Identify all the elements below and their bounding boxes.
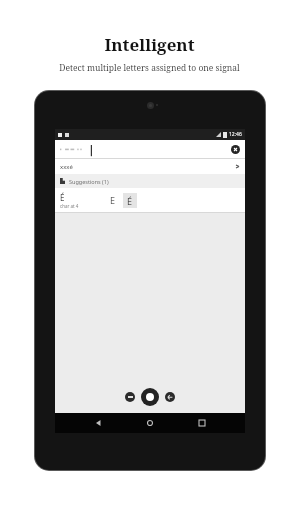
- staticText: É: [60, 192, 65, 203]
- button[interactable]: xxxé: [55, 159, 245, 174]
- staticText: E: [110, 194, 116, 206]
- staticText: Detect multiple letters assigned to one …: [59, 62, 240, 74]
- staticText: xxxé: [60, 163, 73, 171]
- staticText: É: [127, 195, 133, 207]
- staticText: 12:46: [229, 131, 242, 138]
- button[interactable]: Clear: [55, 140, 245, 158]
- staticText: char at 4: [60, 203, 79, 209]
- button[interactable]: Signal: [141, 388, 159, 406]
- staticText: Intelligent: [104, 33, 195, 56]
- button[interactable]: Recents: [194, 415, 210, 431]
- button[interactable]: E: [106, 193, 120, 207]
- button[interactable]: Clear: [231, 145, 240, 154]
- button[interactable]: Backspace: [165, 392, 175, 402]
- button[interactable]: Suggestions (1): [60, 174, 245, 188]
- button[interactable]: É: [123, 193, 137, 208]
- button[interactable]: Back: [91, 415, 107, 431]
- staticText: Suggestions (1): [69, 178, 109, 185]
- button[interactable]: Home: [142, 415, 158, 431]
- button[interactable]: Dash: [125, 392, 135, 402]
